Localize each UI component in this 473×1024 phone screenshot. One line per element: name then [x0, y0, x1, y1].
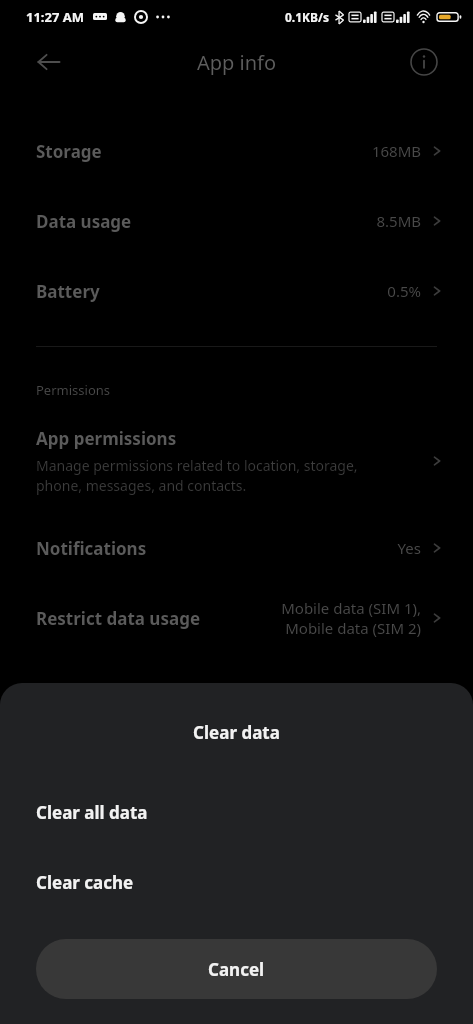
staticText: Mobile data (SIM 1), Mobile data (SIM 2)	[281, 598, 421, 638]
staticText: Clear all data	[36, 801, 148, 824]
staticText: Cancel	[208, 958, 265, 981]
staticText: Permissions	[36, 381, 111, 399]
staticText: Battery	[36, 280, 100, 303]
button[interactable]: App permissions	[0, 423, 473, 513]
button[interactable]: Clear all data	[0, 777, 473, 847]
staticText: Yes	[397, 538, 421, 558]
button[interactable]: Clear cache	[0, 847, 473, 917]
staticText: 0.1KB/s	[285, 9, 330, 25]
button[interactable]: Restrict data usage	[0, 583, 473, 653]
staticText: 168MB	[371, 141, 421, 161]
button[interactable]: Notifications	[0, 513, 473, 583]
button[interactable]: Data usage	[0, 186, 473, 256]
button[interactable]: Storage	[0, 116, 473, 186]
staticText: App info	[0, 49, 473, 76]
button[interactable]: App details	[402, 40, 446, 84]
staticText: Restrict data usage	[36, 607, 201, 630]
staticText: Notifications	[36, 537, 147, 560]
staticText: 8.5MB	[376, 211, 421, 231]
staticText: 0.5%	[387, 281, 421, 301]
staticText: App permissions	[36, 427, 177, 450]
staticText: Clear cache	[36, 871, 134, 894]
button[interactable]: Cancel	[36, 939, 437, 999]
staticText: Manage permissions related to location, …	[36, 456, 358, 495]
button[interactable]: Battery	[0, 256, 473, 326]
staticText: 11:27 AM	[26, 8, 85, 26]
staticText: Storage	[36, 140, 102, 163]
button[interactable]: Back	[25, 38, 73, 86]
staticText: Data usage	[36, 210, 132, 233]
staticText: Clear data	[0, 721, 473, 744]
